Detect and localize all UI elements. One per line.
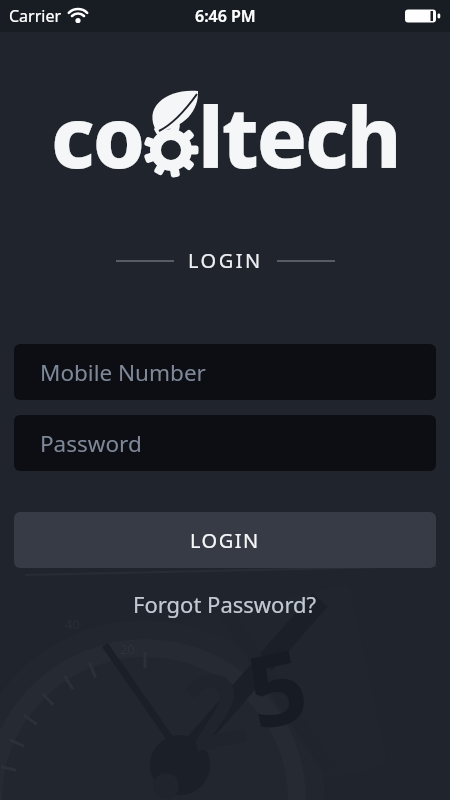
staticText: ltech (198, 79, 400, 192)
button[interactable]: Mobile Number (14, 344, 436, 400)
button[interactable]: Password (14, 415, 436, 471)
staticText: 40 (65, 615, 80, 633)
staticText: Carrier (9, 5, 62, 27)
button[interactable]: Forgot Password? (123, 585, 327, 623)
staticText: Mobile Number (40, 357, 206, 388)
staticText: LOGIN (190, 527, 260, 554)
button[interactable]: LOGIN (14, 512, 436, 568)
staticText: 2 (171, 635, 256, 781)
staticText: Password (40, 428, 142, 459)
staticText: Forgot Password? (133, 589, 317, 619)
staticText: 6:46 PM (195, 5, 256, 27)
staticText: co (51, 79, 144, 192)
staticText: LOGIN (188, 247, 263, 274)
staticText: 5 (234, 613, 319, 759)
